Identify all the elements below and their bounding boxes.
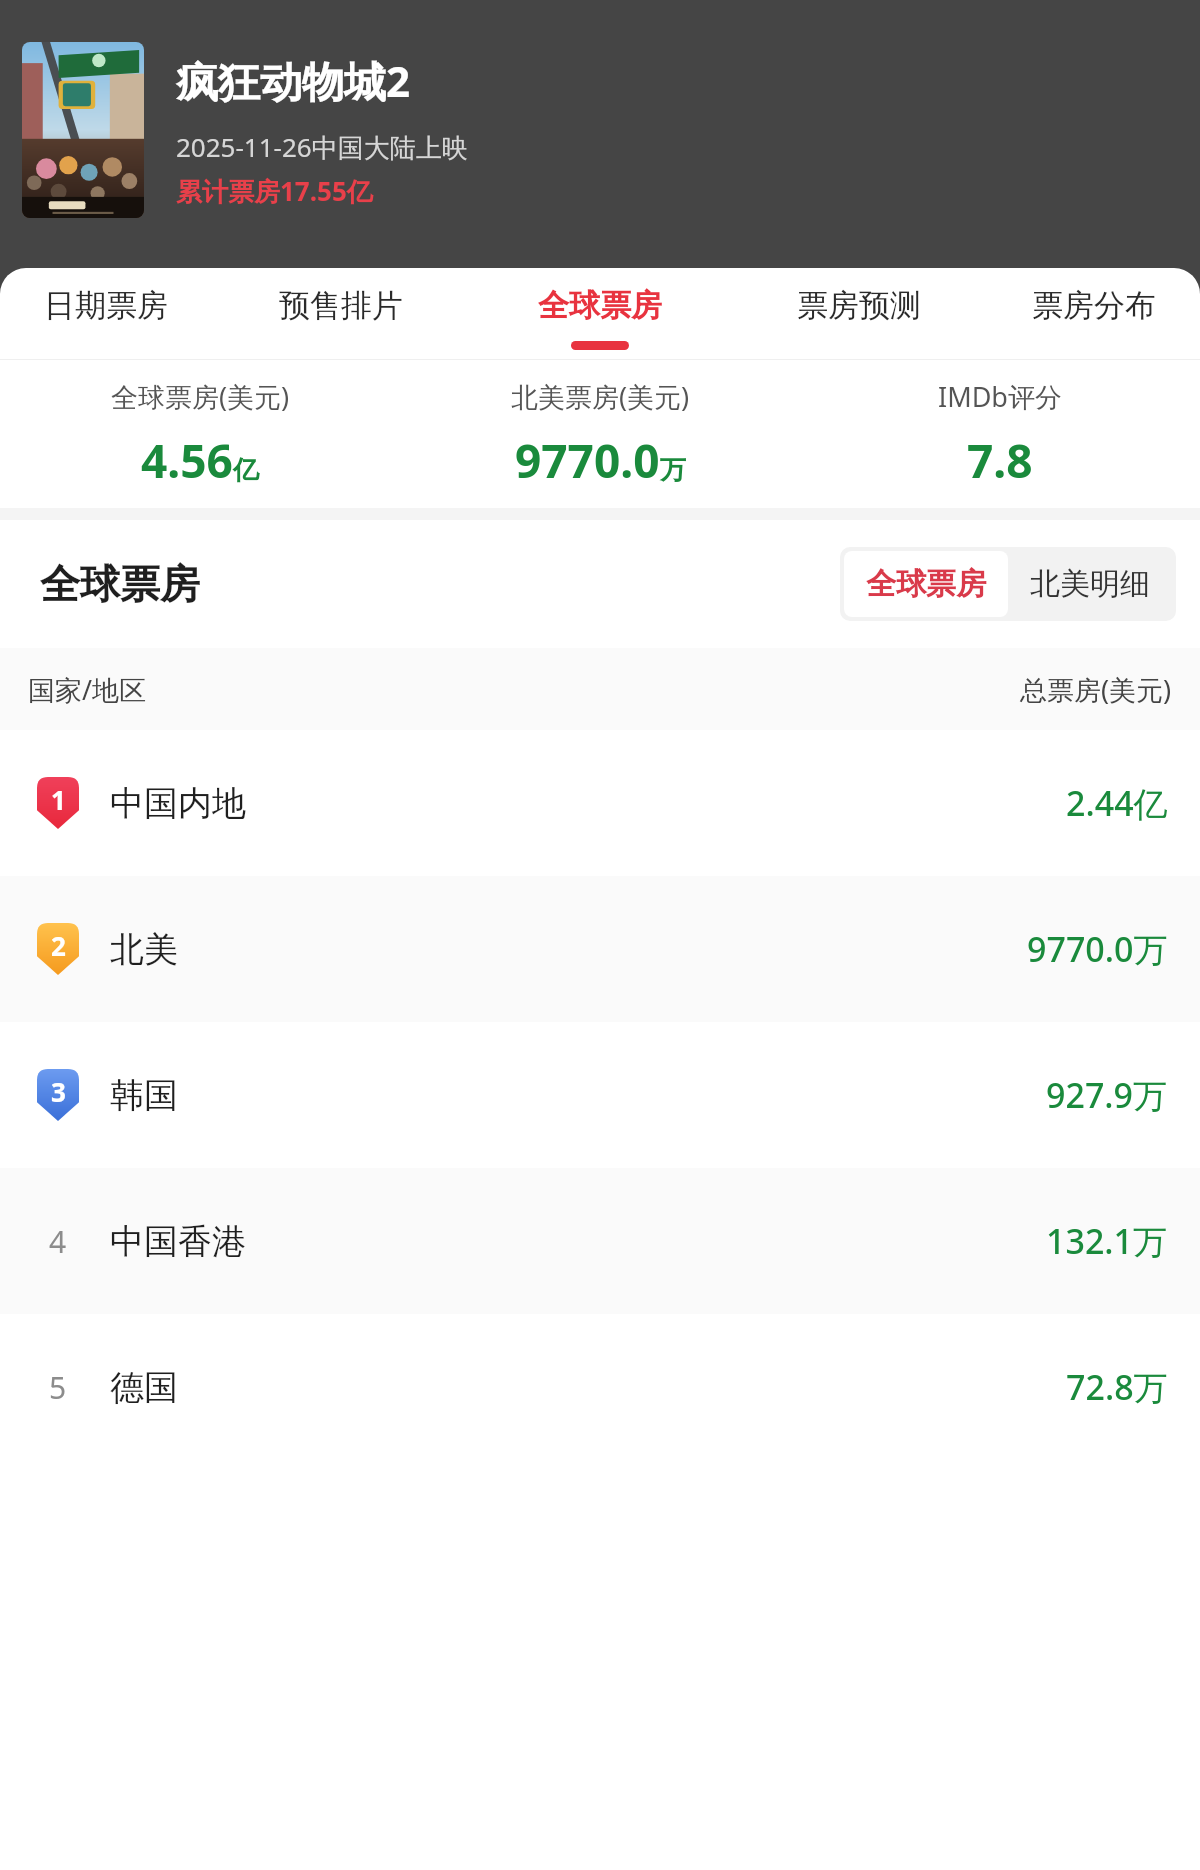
staticText: 北美票房(美元)	[511, 378, 690, 415]
button[interactable]: 票房分布	[988, 268, 1200, 360]
staticText: 票房预测	[797, 286, 921, 325]
staticText: 9770.0万	[1027, 926, 1168, 972]
staticText: 韩国	[110, 1074, 178, 1117]
staticText: 德国	[110, 1366, 178, 1409]
staticText: 累计票房17.55亿	[176, 173, 373, 209]
staticText: 7.8	[967, 429, 1033, 492]
button[interactable]: 票房预测	[729, 268, 988, 360]
staticText: 2.44亿	[1066, 780, 1168, 826]
staticText: 9770.0	[515, 429, 660, 492]
button[interactable]: 北美明细	[1008, 551, 1172, 617]
staticText: 总票房(美元)	[1020, 671, 1172, 708]
button[interactable]: 1	[0, 730, 1200, 876]
button[interactable]: 全球票房(美元)	[0, 378, 400, 492]
staticText: 4	[49, 1221, 67, 1262]
staticText: 2	[51, 928, 66, 963]
button[interactable]: IMDb评分	[800, 378, 1200, 492]
button[interactable]: 4	[0, 1168, 1200, 1314]
staticText: 2025-11-26中国大陆上映	[176, 129, 468, 165]
button[interactable]: 3	[0, 1022, 1200, 1168]
staticText: IMDb评分	[938, 378, 1062, 415]
staticText: 4.56	[141, 429, 233, 492]
staticText: 日期票房	[44, 286, 168, 325]
staticText: 万	[660, 454, 686, 487]
staticText: 1	[51, 782, 66, 817]
staticText: 全球票房	[538, 286, 662, 325]
button[interactable]: 电影海报	[22, 42, 144, 218]
staticText: 疯狂动物城2	[176, 52, 411, 109]
staticText: 预售排片	[279, 286, 403, 325]
staticText: 5	[49, 1367, 67, 1408]
button[interactable]: 日期票房	[0, 268, 211, 360]
button[interactable]: 预售排片	[211, 268, 470, 360]
staticText: 全球票房	[40, 559, 200, 609]
staticText: 927.9万	[1046, 1072, 1168, 1118]
staticText: 132.1万	[1046, 1218, 1168, 1264]
staticText: 北美	[110, 928, 178, 971]
staticText: 全球票房(美元)	[111, 378, 290, 415]
button[interactable]: 2	[0, 876, 1200, 1022]
staticText: 72.8万	[1066, 1364, 1168, 1410]
button[interactable]: 5	[0, 1314, 1200, 1460]
staticText: 北美明细	[1030, 565, 1150, 603]
staticText: 亿	[233, 454, 259, 487]
staticText: 票房分布	[1032, 286, 1156, 325]
button[interactable]: 北美票房(美元)	[400, 378, 800, 492]
button[interactable]: 全球票房	[844, 551, 1008, 617]
staticText: 3	[51, 1074, 66, 1109]
staticText: 全球票房	[866, 565, 986, 603]
staticText: 国家/地区	[28, 671, 147, 708]
staticText: 中国内地	[110, 782, 246, 825]
staticText: 中国香港	[110, 1220, 246, 1263]
button[interactable]: 全球票房	[470, 268, 729, 360]
